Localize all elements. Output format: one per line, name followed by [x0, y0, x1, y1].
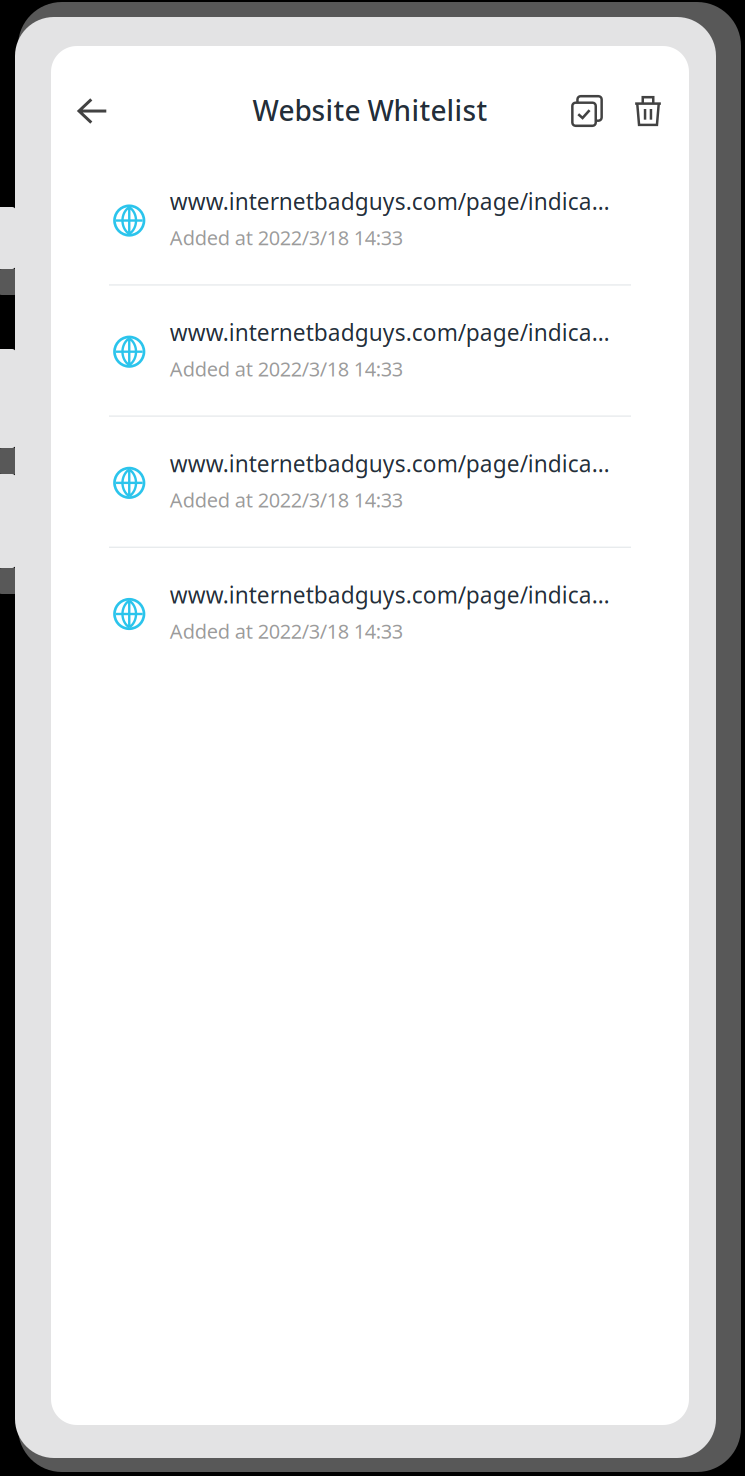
button[interactable]: www.internetbadguys.com/page/indica… [109, 286, 631, 416]
staticText: Added at 2022/3/18 14:33 [170, 486, 403, 513]
staticText: Added at 2022/3/18 14:33 [170, 355, 403, 382]
button[interactable]: www.internetbadguys.com/page/indica… [109, 417, 631, 547]
staticText: Added at 2022/3/18 14:33 [170, 224, 403, 251]
staticText: Added at 2022/3/18 14:33 [170, 618, 403, 644]
button[interactable]: www.internetbadguys.com/page/indica… [109, 154, 631, 284]
button[interactable]: Delete [624, 83, 672, 139]
button[interactable]: www.internetbadguys.com/page/indica… [109, 548, 631, 678]
staticText: www.internetbadguys.com/page/indica… [170, 186, 610, 216]
staticText: Website Whitelist [252, 91, 487, 129]
button[interactable]: Select All [563, 83, 611, 139]
staticText: www.internetbadguys.com/page/indica… [170, 580, 610, 610]
staticText: www.internetbadguys.com/page/indica… [170, 448, 610, 478]
staticText: www.internetbadguys.com/page/indica… [170, 317, 610, 347]
button[interactable]: Back [64, 83, 120, 139]
